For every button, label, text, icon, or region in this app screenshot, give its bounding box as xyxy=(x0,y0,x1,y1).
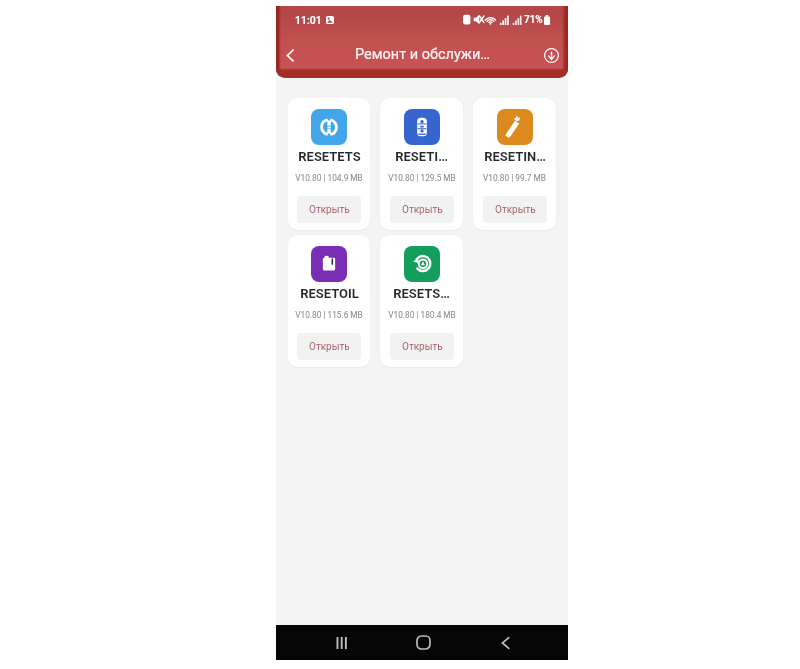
button[interactable]: RESETOIL xyxy=(288,235,370,367)
button[interactable]: Открыть xyxy=(297,196,361,223)
button[interactable]: Download xyxy=(540,44,562,66)
staticText: V10.80 | 115.6 MB xyxy=(295,310,363,320)
staticText: 11:01 xyxy=(295,14,322,26)
staticText: Открыть xyxy=(309,341,350,353)
staticText: RESETIN… xyxy=(484,149,546,164)
staticText: V10.80 | 129.5 MB xyxy=(388,173,456,183)
staticText: 71% xyxy=(524,14,543,26)
button[interactable]: RESETS… xyxy=(380,235,463,367)
staticText: RESETS… xyxy=(393,286,450,301)
button[interactable]: RESETI… xyxy=(380,98,463,230)
staticText: Ремонт и обслужи… xyxy=(355,46,490,63)
staticText: RESETI… xyxy=(395,149,448,164)
button[interactable]: Back xyxy=(277,42,303,68)
button[interactable]: Home xyxy=(382,625,464,660)
button[interactable]: RESETETS xyxy=(288,98,370,230)
button[interactable]: Back xyxy=(464,625,546,660)
staticText: V10.80 | 180.4 MB xyxy=(388,310,456,320)
button[interactable]: Recent apps xyxy=(300,625,382,660)
staticText: Открыть xyxy=(402,204,443,216)
staticText: Открыть xyxy=(309,204,350,216)
staticText: Открыть xyxy=(495,204,536,216)
staticText: Открыть xyxy=(402,341,443,353)
staticText: V10.80 | 99.7 MB xyxy=(483,173,546,183)
button[interactable]: Открыть xyxy=(483,196,547,223)
staticText: V10.80 | 104.9 MB xyxy=(295,173,363,183)
button[interactable]: Открыть xyxy=(390,333,454,360)
button[interactable]: Открыть xyxy=(297,333,361,360)
staticText: RESETETS xyxy=(298,149,361,164)
staticText: RESETOIL xyxy=(300,286,359,301)
button[interactable]: RESETIN… xyxy=(473,98,556,230)
button[interactable]: Открыть xyxy=(390,196,454,223)
